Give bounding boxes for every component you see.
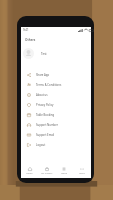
- staticText: About us: [36, 93, 48, 97]
- button[interactable]: Logout: [21, 140, 91, 150]
- staticText: Logout: [36, 143, 46, 147]
- button[interactable]: Support Number: [21, 120, 91, 130]
- button[interactable]: Table Booking: [21, 110, 91, 120]
- staticText: Support Email: [36, 133, 55, 137]
- button[interactable]: About us: [21, 90, 91, 100]
- staticText: Others: [25, 38, 36, 42]
- button[interactable]: My Orders: [38, 164, 55, 178]
- staticText: 9:41: [23, 28, 29, 32]
- button[interactable]: Share App: [21, 70, 91, 80]
- button[interactable]: Support Email: [21, 130, 91, 140]
- staticText: Privacy Policy: [36, 103, 54, 107]
- button[interactable]: Terms & Conditions: [21, 80, 91, 90]
- staticText: Share App: [36, 73, 50, 77]
- staticText: Home: [26, 172, 33, 175]
- staticText: More: [79, 172, 85, 175]
- button[interactable]: Home: [21, 164, 38, 178]
- staticText: Terms & Conditions: [36, 83, 62, 87]
- staticText: Test: [41, 52, 47, 56]
- button[interactable]: Menu: [55, 164, 73, 178]
- button[interactable]: Test: [21, 44, 91, 63]
- staticText: Table Booking: [36, 113, 55, 117]
- button[interactable]: More: [73, 164, 91, 178]
- button[interactable]: Privacy Policy: [21, 100, 91, 110]
- staticText: My Orders: [41, 172, 53, 175]
- staticText: Menu: [61, 172, 68, 175]
- staticText: Support Number: [36, 123, 58, 127]
